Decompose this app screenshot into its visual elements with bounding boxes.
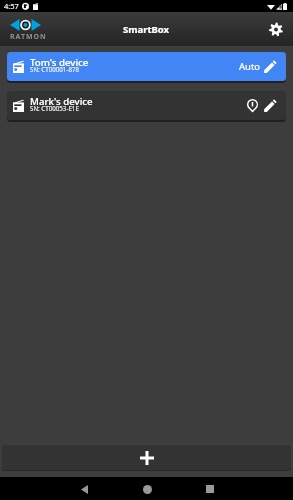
button[interactable]: Edit bbox=[262, 58, 279, 75]
staticText: Mark's device bbox=[30, 95, 93, 108]
staticText: SN: CT00001-878 bbox=[30, 65, 80, 73]
button[interactable]: Home bbox=[136, 478, 158, 500]
staticText: SN: CT00053-E1E bbox=[30, 104, 79, 112]
staticText: Auto bbox=[239, 60, 261, 73]
button[interactable]: Mark's device bbox=[7, 91, 286, 120]
button[interactable]: Back bbox=[73, 478, 95, 500]
button[interactable]: Recents bbox=[199, 478, 221, 500]
button[interactable]: Edit bbox=[262, 97, 279, 114]
button[interactable]: Tom's device bbox=[7, 52, 286, 81]
staticText: 4:57 bbox=[4, 1, 19, 11]
button[interactable]: Settings bbox=[261, 14, 291, 44]
button[interactable]: Add device bbox=[2, 445, 291, 470]
staticText: RATMON bbox=[10, 32, 47, 42]
button[interactable]: Location alert bbox=[244, 97, 261, 114]
staticText: Tom's device bbox=[30, 56, 89, 69]
staticText: SmartBox bbox=[123, 23, 170, 36]
button[interactable]: Ratmon bbox=[10, 13, 48, 45]
